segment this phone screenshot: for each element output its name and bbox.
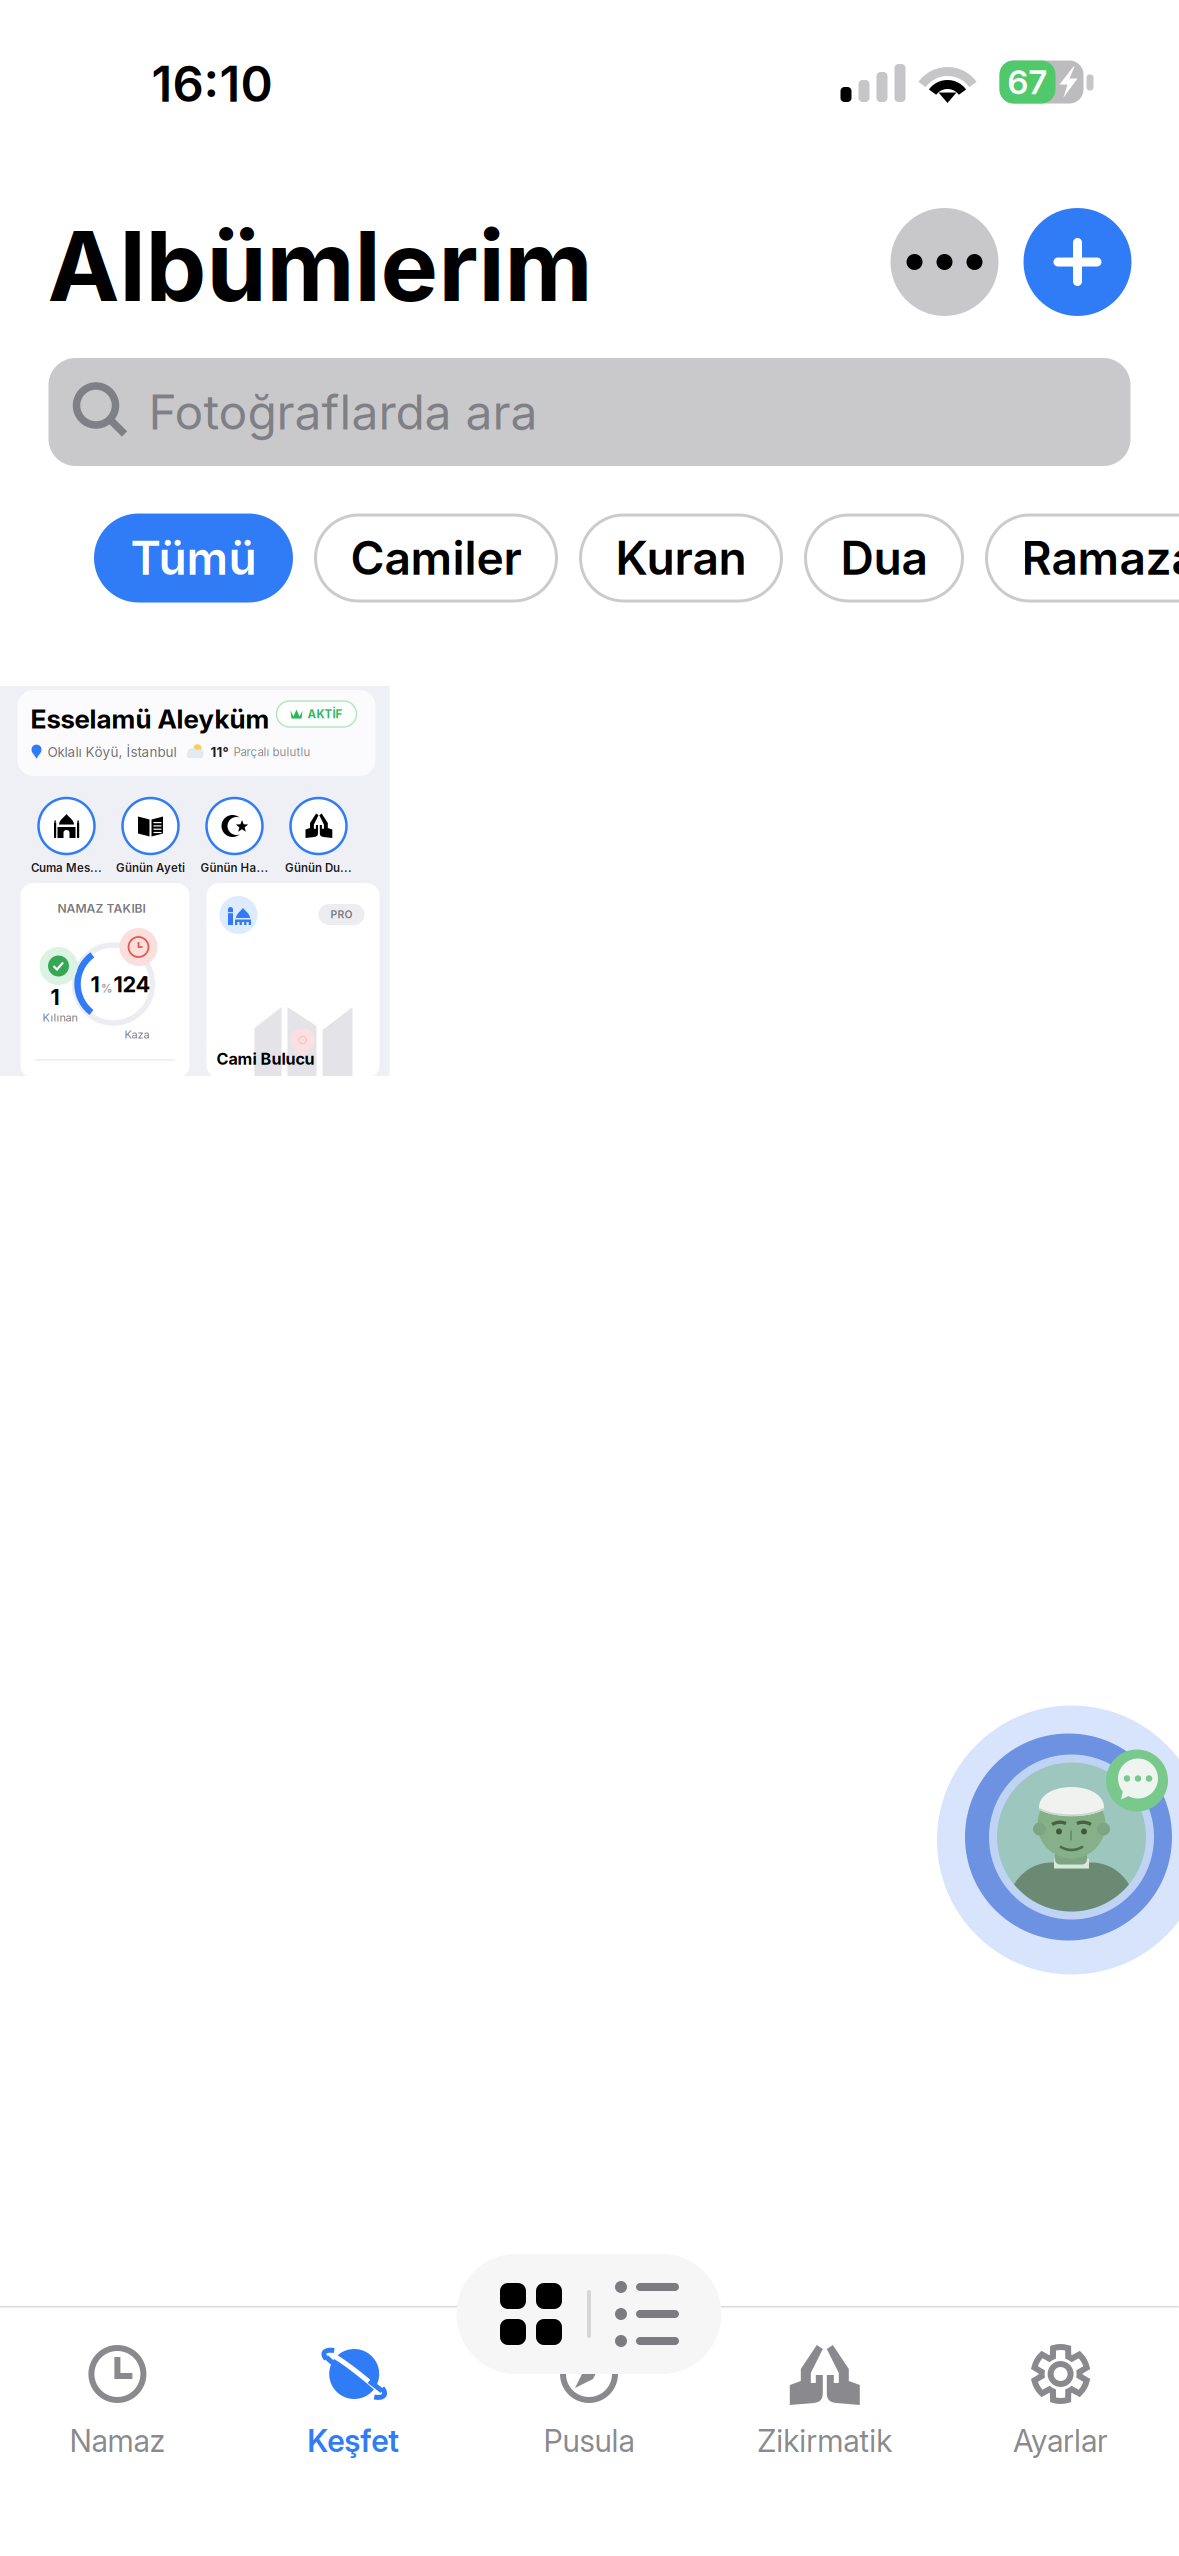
staticText: Kuran [615,530,746,586]
staticText: Fotoğraflarda ara [148,383,537,441]
button[interactable]: Keşfet [235,2306,471,2556]
button[interactable]: Camiler [315,515,556,601]
staticText: NAMAZ TAKIBI [57,901,145,916]
staticText: Zikirmatik [757,2422,892,2459]
staticText: Günün Ayeti [116,861,185,875]
button[interactable]: Namaz [0,2306,235,2556]
staticText: PRO [330,908,352,921]
staticText: 67 [1007,62,1047,102]
staticText: Ramazan [1021,530,1179,586]
staticText: Keşfet [307,2422,399,2459]
staticText: Kaza [124,1028,149,1041]
button[interactable]: Kuran [580,515,781,601]
staticText: Günün Ha... [200,861,268,875]
staticText: Cami Bulucu [216,1049,314,1068]
staticText: 1 [50,984,59,1010]
staticText: Camiler [350,530,521,586]
staticText: Cuma Mes... [31,861,102,875]
staticText: Ayarlar [1013,2422,1108,2459]
staticText: Namaz [69,2422,165,2459]
button[interactable]: Dua [805,515,962,601]
staticText: 11° [210,744,228,760]
button[interactable]: Grid view [475,2254,587,2374]
staticText: Oklalı Köyü, İstanbul [47,744,176,760]
button[interactable]: Ayarlar [943,2306,1178,2556]
staticText: Dua [840,530,927,586]
staticText: Pusula [543,2422,634,2459]
button[interactable]: Pusula [471,2306,707,2556]
staticText: % [101,982,112,995]
button[interactable]: Ramazan [986,515,1179,601]
button[interactable]: Fotoğraflarda ara [48,358,1130,466]
button[interactable]: Zikirmatik [707,2306,943,2556]
button[interactable]: More options [890,208,998,316]
staticText: Albümlerim [47,208,592,324]
staticText: Tümü [130,530,256,586]
button[interactable]: Album photo [0,686,389,1076]
button[interactable]: List view [591,2254,703,2374]
staticText: Parçalı bulutlu [233,745,310,759]
button[interactable]: Create album [1023,208,1131,316]
button[interactable]: Tümü [95,515,291,601]
staticText: 124 [113,971,150,997]
button[interactable]: Ask the AI assistant [937,1705,1179,1974]
staticText: 1 [90,971,99,997]
staticText: Esselamü Aleyküm [30,703,269,735]
staticText: Günün Du... [285,861,352,875]
staticText: Kılınan [42,1011,77,1024]
staticText: 16:10 [151,54,272,114]
staticText: AKTİF [307,707,342,721]
